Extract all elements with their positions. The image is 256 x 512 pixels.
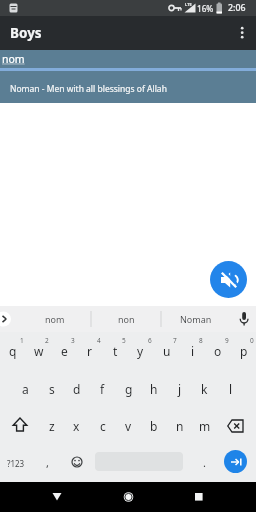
staticText: .: [203, 455, 206, 470]
button[interactable]: u: [154, 333, 179, 369]
button[interactable]: o: [205, 333, 230, 369]
button[interactable]: h: [141, 371, 166, 407]
button[interactable]: [222, 408, 254, 444]
button[interactable]: a: [13, 371, 38, 407]
button[interactable]: nom: [25, 307, 85, 331]
button[interactable]: z: [39, 408, 64, 444]
button[interactable]: j: [167, 371, 192, 407]
button[interactable]: i: [180, 333, 205, 369]
staticText: f: [100, 381, 105, 397]
button[interactable]: [224, 450, 247, 473]
staticText: ?123: [7, 458, 25, 469]
staticText: w: [34, 343, 44, 359]
staticText: h: [150, 381, 158, 397]
staticText: a: [22, 381, 29, 397]
button[interactable]: l: [218, 371, 243, 407]
staticText: 9: [225, 336, 229, 345]
staticText: LTE: [185, 2, 192, 7]
staticText: 2: [45, 336, 49, 345]
staticText: j: [178, 381, 182, 397]
button[interactable]: [210, 261, 247, 298]
staticText: l: [229, 381, 233, 397]
staticText: 4: [97, 336, 101, 345]
button[interactable]: n: [167, 408, 192, 444]
button[interactable]: b: [141, 408, 166, 444]
button[interactable]: [4, 408, 36, 444]
button[interactable]: d: [64, 371, 89, 407]
button[interactable]: [64, 446, 90, 478]
button[interactable]: x: [64, 408, 89, 444]
button[interactable]: m: [192, 408, 217, 444]
button[interactable]: t: [103, 333, 128, 369]
button[interactable]: [181, 484, 215, 510]
button[interactable]: [111, 484, 145, 510]
staticText: 8: [199, 336, 203, 345]
button[interactable]: r: [77, 333, 102, 369]
staticText: e: [61, 343, 68, 359]
staticText: p: [240, 343, 248, 359]
staticText: 7: [173, 336, 177, 345]
staticText: Noman: [180, 313, 212, 325]
button[interactable]: w: [26, 333, 51, 369]
staticText: q: [9, 343, 17, 359]
staticText: Boys: [10, 24, 42, 42]
staticText: n: [176, 418, 184, 434]
button[interactable]: .: [192, 445, 216, 479]
staticText: 3: [71, 336, 75, 345]
staticText: c: [100, 418, 106, 434]
button[interactable]: c: [90, 408, 115, 444]
staticText: g: [125, 381, 133, 397]
button[interactable]: q: [0, 333, 25, 369]
staticText: non: [118, 313, 135, 325]
button[interactable]: Noman: [166, 307, 226, 331]
staticText: 16%: [197, 3, 214, 14]
staticText: d: [73, 381, 81, 397]
staticText: y: [137, 343, 144, 359]
button[interactable]: k: [192, 371, 217, 407]
staticText: u: [163, 343, 171, 359]
button[interactable]: f: [90, 371, 115, 407]
button[interactable]: g: [116, 371, 141, 407]
button[interactable]: Boys: [4, 22, 74, 44]
button[interactable]: v: [116, 408, 141, 444]
staticText: nom: [45, 313, 65, 325]
staticText: o: [214, 343, 222, 359]
staticText: s: [49, 381, 55, 397]
staticText: Noman - Men with all blessings of Allah: [10, 83, 167, 95]
button[interactable]: y: [128, 333, 153, 369]
button[interactable]: nom: [0, 50, 256, 69]
staticText: k: [201, 381, 208, 397]
staticText: b: [150, 418, 158, 434]
staticText: x: [73, 418, 80, 434]
staticText: 0: [250, 336, 254, 345]
button[interactable]: non: [96, 307, 156, 331]
staticText: 6: [148, 336, 152, 345]
staticText: 2:06: [228, 2, 246, 14]
staticText: ,: [46, 455, 49, 470]
button[interactable]: [40, 484, 74, 510]
staticText: z: [49, 418, 55, 434]
button[interactable]: Noman - Men with all blessings of Allah: [0, 71, 256, 103]
button[interactable]: [232, 22, 252, 44]
button[interactable]: ?123: [1, 446, 31, 480]
staticText: 5: [122, 336, 126, 345]
staticText: t: [113, 343, 118, 359]
button[interactable]: s: [39, 371, 64, 407]
button[interactable]: e: [52, 333, 77, 369]
staticText: i: [191, 343, 195, 359]
staticText: nom: [2, 52, 25, 66]
staticText: 1: [20, 336, 24, 345]
button[interactable]: ,: [35, 445, 59, 479]
button[interactable]: p: [231, 333, 256, 369]
staticText: r: [87, 343, 92, 359]
staticText: m: [199, 418, 211, 434]
staticText: v: [125, 418, 132, 434]
